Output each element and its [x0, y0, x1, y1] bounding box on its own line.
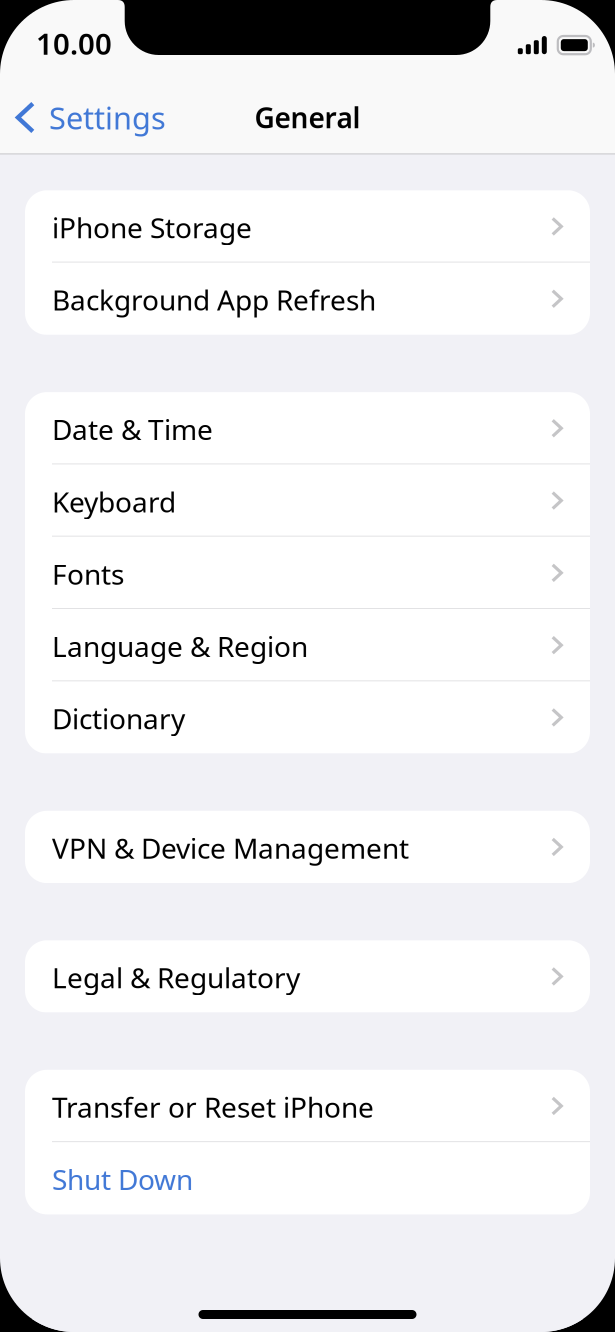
- button[interactable]: Settings: [0, 82, 182, 153]
- staticText: Background App Refresh: [52, 281, 376, 318]
- staticText: Date & Time: [52, 411, 213, 448]
- staticText: Keyboard: [52, 483, 176, 520]
- button[interactable]: Dictionary: [25, 681, 590, 754]
- button[interactable]: Legal & Regulatory: [25, 940, 590, 1013]
- staticText: Shut Down: [52, 1161, 193, 1198]
- staticText: Legal & Regulatory: [52, 959, 300, 996]
- button[interactable]: Background App Refresh: [25, 263, 590, 335]
- button[interactable]: Keyboard: [25, 464, 590, 537]
- staticText: Settings: [49, 97, 166, 138]
- staticText: 10.00: [36, 24, 112, 63]
- button[interactable]: VPN & Device Management: [25, 811, 590, 883]
- staticText: VPN & Device Management: [52, 829, 409, 867]
- staticText: General: [254, 99, 360, 136]
- button[interactable]: Date & Time: [25, 392, 590, 464]
- button[interactable]: Shut Down: [25, 1142, 590, 1214]
- staticText: iPhone Storage: [52, 209, 252, 246]
- button[interactable]: Fonts: [25, 537, 590, 609]
- button[interactable]: iPhone Storage: [25, 190, 590, 263]
- staticText: Language & Region: [52, 628, 308, 665]
- button[interactable]: Transfer or Reset iPhone: [25, 1070, 590, 1142]
- button[interactable]: Language & Region: [25, 609, 590, 681]
- staticText: Transfer or Reset iPhone: [52, 1088, 374, 1126]
- staticText: Fonts: [52, 555, 124, 592]
- staticText: Dictionary: [52, 700, 185, 737]
